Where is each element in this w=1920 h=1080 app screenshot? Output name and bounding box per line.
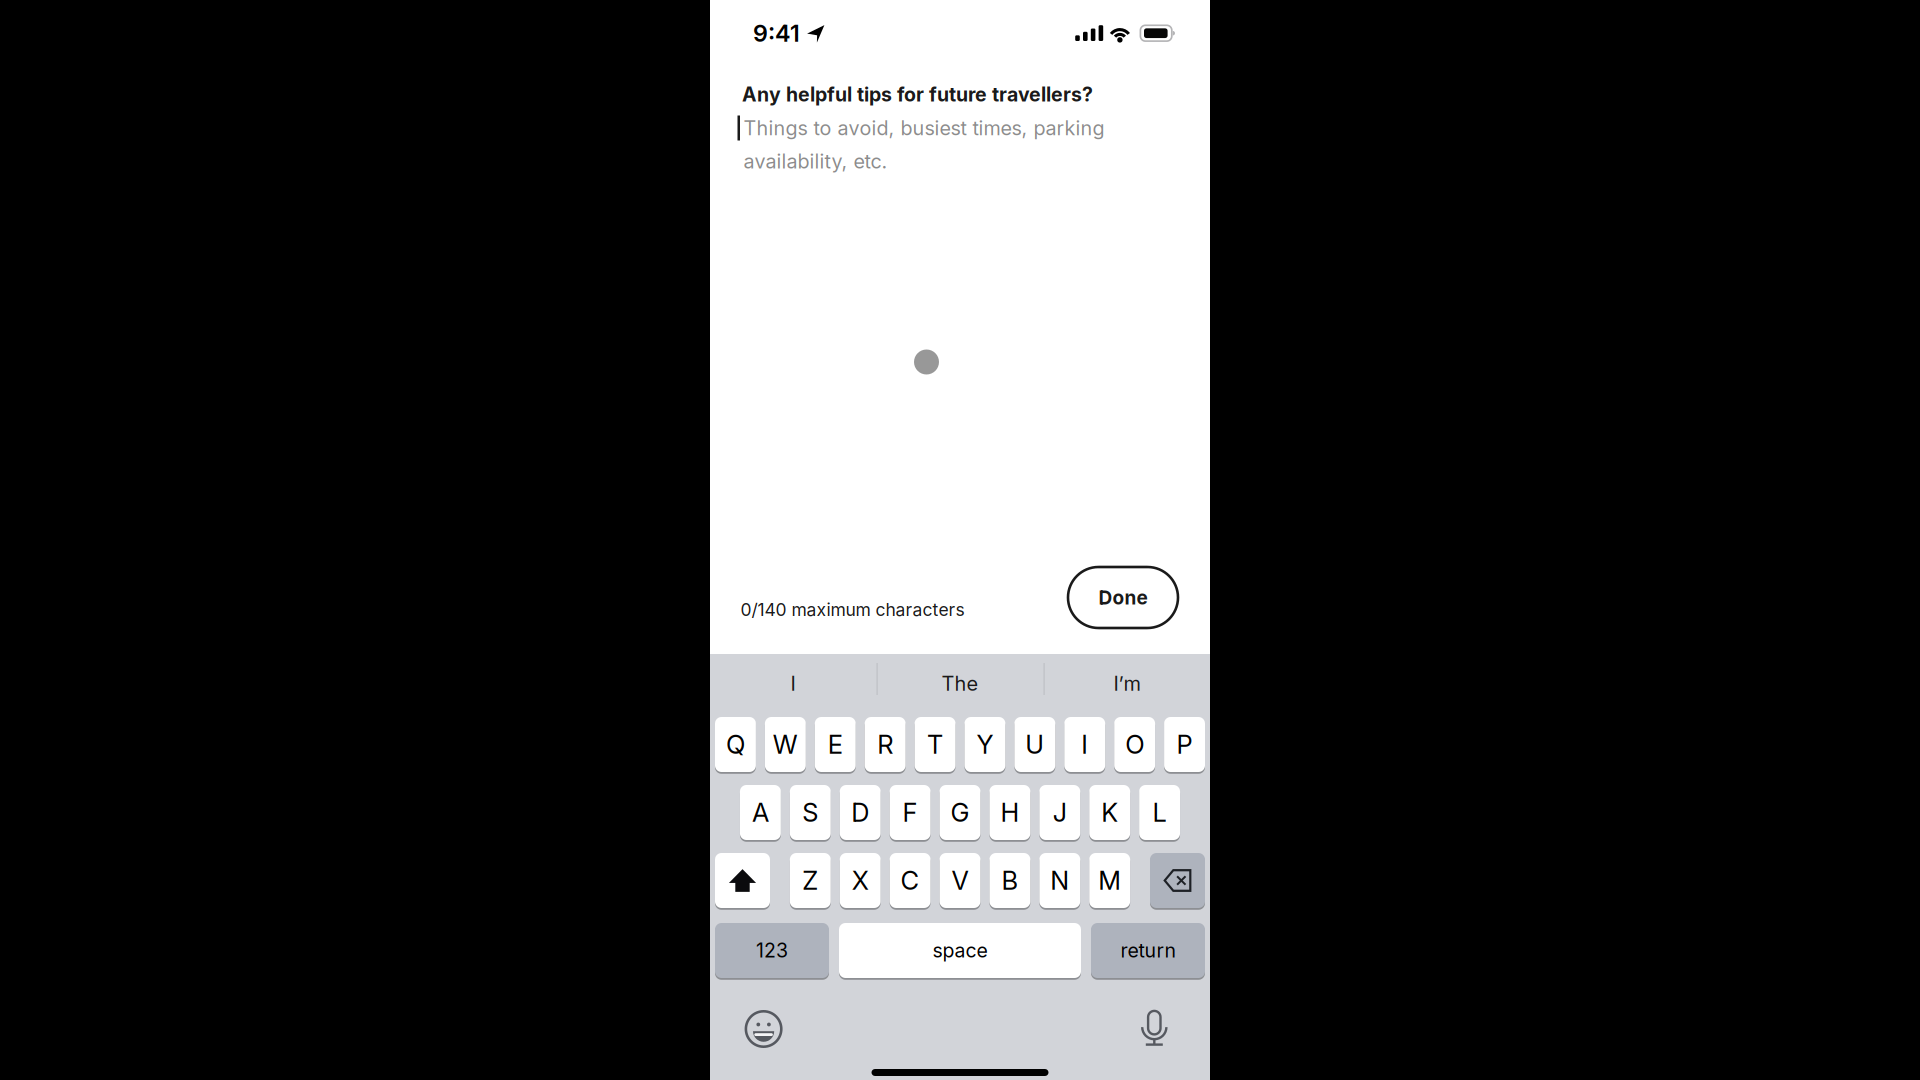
- staticText: O: [1125, 729, 1144, 760]
- button[interactable]: I: [1064, 717, 1105, 772]
- button[interactable]: N: [1039, 853, 1080, 908]
- button[interactable]: I: [710, 654, 876, 713]
- staticText: I: [1081, 729, 1088, 760]
- button[interactable]: Y: [964, 717, 1005, 772]
- staticText: H: [1000, 797, 1019, 828]
- staticText: A: [752, 797, 769, 828]
- button[interactable]: K: [1089, 785, 1130, 840]
- staticText: space: [932, 939, 987, 962]
- staticText: Done: [1098, 586, 1147, 609]
- button[interactable]: U: [1014, 717, 1055, 772]
- button[interactable]: Z: [790, 853, 831, 908]
- button[interactable]: L: [1139, 785, 1180, 840]
- staticText: G: [950, 797, 969, 828]
- button[interactable]: W: [765, 717, 806, 772]
- staticText: Y: [976, 729, 993, 760]
- button[interactable]: D: [840, 785, 881, 840]
- staticText: 123: [756, 939, 788, 962]
- button[interactable]: Q: [715, 717, 756, 772]
- button[interactable]: Dictation: [1139, 1009, 1169, 1047]
- button[interactable]: R: [865, 717, 906, 772]
- staticText: X: [852, 865, 869, 896]
- staticText: 0/140 maximum characters: [740, 599, 964, 620]
- button[interactable]: space: [839, 923, 1081, 978]
- button[interactable]: X: [840, 853, 881, 908]
- button[interactable]: I’m: [1044, 654, 1210, 713]
- staticText: S: [802, 797, 818, 828]
- button[interactable]: V: [939, 853, 980, 908]
- staticText: M: [1098, 865, 1121, 896]
- staticText: The: [941, 671, 978, 696]
- button[interactable]: G: [939, 785, 980, 840]
- staticText: D: [851, 797, 869, 828]
- staticText: Q: [726, 729, 745, 760]
- staticText: K: [1101, 797, 1118, 828]
- staticText: L: [1153, 797, 1167, 828]
- staticText: Things to avoid, busiest times, parking: [743, 116, 1104, 140]
- button[interactable]: return: [1091, 923, 1205, 978]
- staticText: V: [951, 865, 968, 896]
- staticText: C: [901, 865, 920, 896]
- button[interactable]: S: [790, 785, 831, 840]
- staticText: R: [877, 729, 893, 760]
- staticText: I’m: [1113, 671, 1140, 696]
- staticText: E: [828, 729, 843, 760]
- button[interactable]: Emoji: [744, 1009, 784, 1049]
- button[interactable]: H: [989, 785, 1030, 840]
- button[interactable]: F: [890, 785, 930, 840]
- staticText: U: [1025, 729, 1044, 760]
- button[interactable]: 123: [715, 923, 829, 978]
- button[interactable]: Shift: [715, 853, 770, 908]
- button[interactable]: A: [740, 785, 781, 840]
- button[interactable]: Done: [1068, 567, 1178, 628]
- staticText: Z: [802, 865, 818, 896]
- staticText: I: [790, 671, 795, 696]
- staticText: N: [1050, 865, 1069, 896]
- staticText: T: [927, 729, 943, 760]
- staticText: P: [1176, 729, 1192, 760]
- button[interactable]: C: [890, 853, 930, 908]
- button[interactable]: J: [1039, 785, 1080, 840]
- staticText: B: [1001, 865, 1018, 896]
- staticText: W: [773, 729, 798, 760]
- button[interactable]: E: [815, 717, 856, 772]
- button[interactable]: The: [877, 654, 1043, 713]
- staticText: J: [1053, 797, 1067, 828]
- button[interactable]: O: [1114, 717, 1155, 772]
- button[interactable]: M: [1089, 853, 1130, 908]
- staticText: 9:41: [753, 19, 800, 47]
- button[interactable]: T: [915, 717, 955, 772]
- staticText: return: [1120, 939, 1175, 962]
- staticText: availability, etc.: [743, 149, 887, 173]
- button[interactable]: P: [1164, 717, 1205, 772]
- staticText: F: [903, 797, 918, 828]
- button[interactable]: Delete: [1150, 853, 1205, 908]
- staticText: Any helpful tips for future travellers?: [742, 82, 1093, 106]
- button[interactable]: B: [989, 853, 1030, 908]
